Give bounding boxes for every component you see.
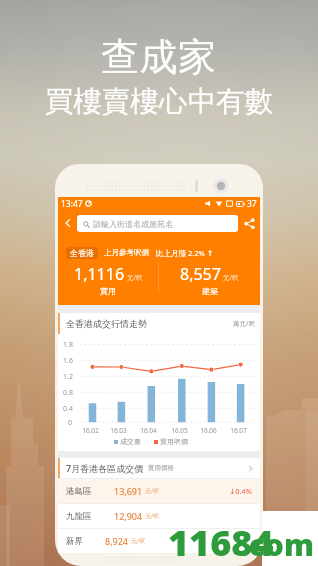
button[interactable]: 新界 [58,529,260,553]
button[interactable]: Back [58,210,77,236]
staticText: .com [240,524,314,565]
staticText: 元/呎 [223,273,239,282]
button[interactable]: 九龍區 [58,504,260,528]
staticText: 1.8 [63,340,73,350]
staticText: 11684 [168,518,274,566]
staticText: 1,1116 [74,263,125,285]
staticText: 上月參考呎價 [104,248,149,257]
staticText: 0.4 [63,404,73,414]
staticText: 元/呎 [127,273,143,282]
staticText: 元/呎 [145,512,160,520]
staticText: 37 [247,198,257,210]
staticText: 0 [68,418,73,428]
staticText: 1.2 [63,372,73,382]
staticText: 買樓賣樓心中有數 [45,84,273,120]
button[interactable]: 全香港成交行情走勢 [58,313,260,334]
staticText: 查成家 [101,33,217,81]
button[interactable]: 全香港 [66,247,98,259]
staticText: 請輸入街道名或屋苑名 [93,219,173,229]
staticText: 元/呎 [145,487,160,495]
staticText: 8,557 [180,263,221,285]
button[interactable]: 7月香港各區成交價 [58,458,260,478]
staticText: 16.03 [110,426,127,435]
button[interactable]: 港島區 [58,479,260,503]
staticText: 7月香港各區成交價 [66,462,144,474]
staticText: 九龍區 [66,511,92,522]
staticText: 16.06 [200,426,217,435]
staticText: 16.02 [82,426,99,435]
button[interactable]: Share [238,210,260,236]
staticText: 16.05 [171,426,188,435]
staticText: 港島區 [66,486,92,497]
staticText: 8,924 [105,535,129,547]
staticText: ↓0.4% [229,486,253,496]
staticText: 12,904 [114,510,143,522]
staticText: 全香港成交行情走勢 [66,318,147,329]
staticText: 元/呎 [131,537,146,545]
staticText: 實用價格 [148,464,174,472]
staticText: 比上月漲 2.2% ↑ [156,248,214,258]
staticText: 全香港 [70,248,94,258]
staticText: 13,691 [114,485,143,497]
staticText: 0.8 [63,388,73,398]
staticText: 建築 [202,286,218,296]
staticText: 實用呎價 [160,437,188,446]
staticText: 新界 [66,536,83,547]
staticText: 1.6 [63,356,73,366]
staticText: 16.07 [230,426,247,435]
button[interactable]: 請輸入街道名或屋苑名 [77,215,238,232]
staticText: 13:47 [61,198,83,210]
staticText: 16.04 [140,426,157,435]
staticText: 成交量 [120,437,141,446]
staticText: 實用 [100,286,116,296]
staticText: 萬元/呎 [233,319,255,328]
